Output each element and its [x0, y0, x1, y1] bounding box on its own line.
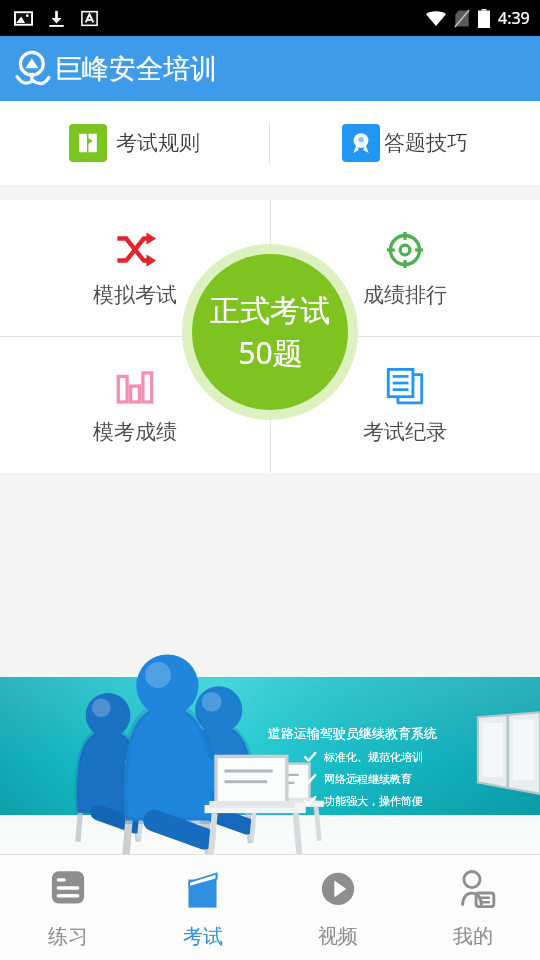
button[interactable]: 视频	[270, 855, 405, 960]
button[interactable]: 模拟考试	[0, 200, 270, 336]
button[interactable]: 练习	[0, 855, 135, 960]
button[interactable]: 考试规则	[0, 101, 269, 185]
staticText: 答题技巧	[384, 130, 468, 156]
staticText: 功能强大，操作简便	[324, 794, 423, 808]
staticText: 正式考试	[210, 292, 330, 330]
staticText: 考试纪录	[363, 419, 447, 445]
staticText: 50题	[238, 332, 303, 373]
staticText: 道路运输驾驶员继续教育系统	[268, 725, 437, 741]
staticText: 视频	[318, 924, 358, 949]
button[interactable]: 道路运输驾驶员继续教育系统 banner	[0, 677, 540, 854]
staticText: 考试规则	[116, 130, 200, 156]
staticText: 成绩排行	[363, 282, 447, 308]
staticText: 模拟考试	[93, 282, 177, 308]
button[interactable]: 答题技巧	[270, 101, 540, 185]
staticText: 4:39	[498, 7, 530, 29]
button[interactable]: 成绩排行	[270, 200, 540, 336]
button[interactable]: 考试	[135, 855, 270, 960]
button[interactable]: 考试纪录	[270, 336, 540, 473]
staticText: 我的	[453, 924, 493, 949]
staticText: 模考成绩	[93, 419, 177, 445]
button[interactable]: 模考成绩	[0, 336, 270, 473]
staticText: 练习	[48, 924, 88, 949]
button[interactable]: 正式考试	[182, 244, 358, 420]
staticText: 标准化、规范化培训	[324, 750, 423, 764]
button[interactable]: 我的	[405, 855, 540, 960]
staticText: 巨峰安全培训	[55, 52, 217, 86]
staticText: 网络远程继续教育	[324, 772, 412, 786]
staticText: 考试	[183, 924, 223, 949]
